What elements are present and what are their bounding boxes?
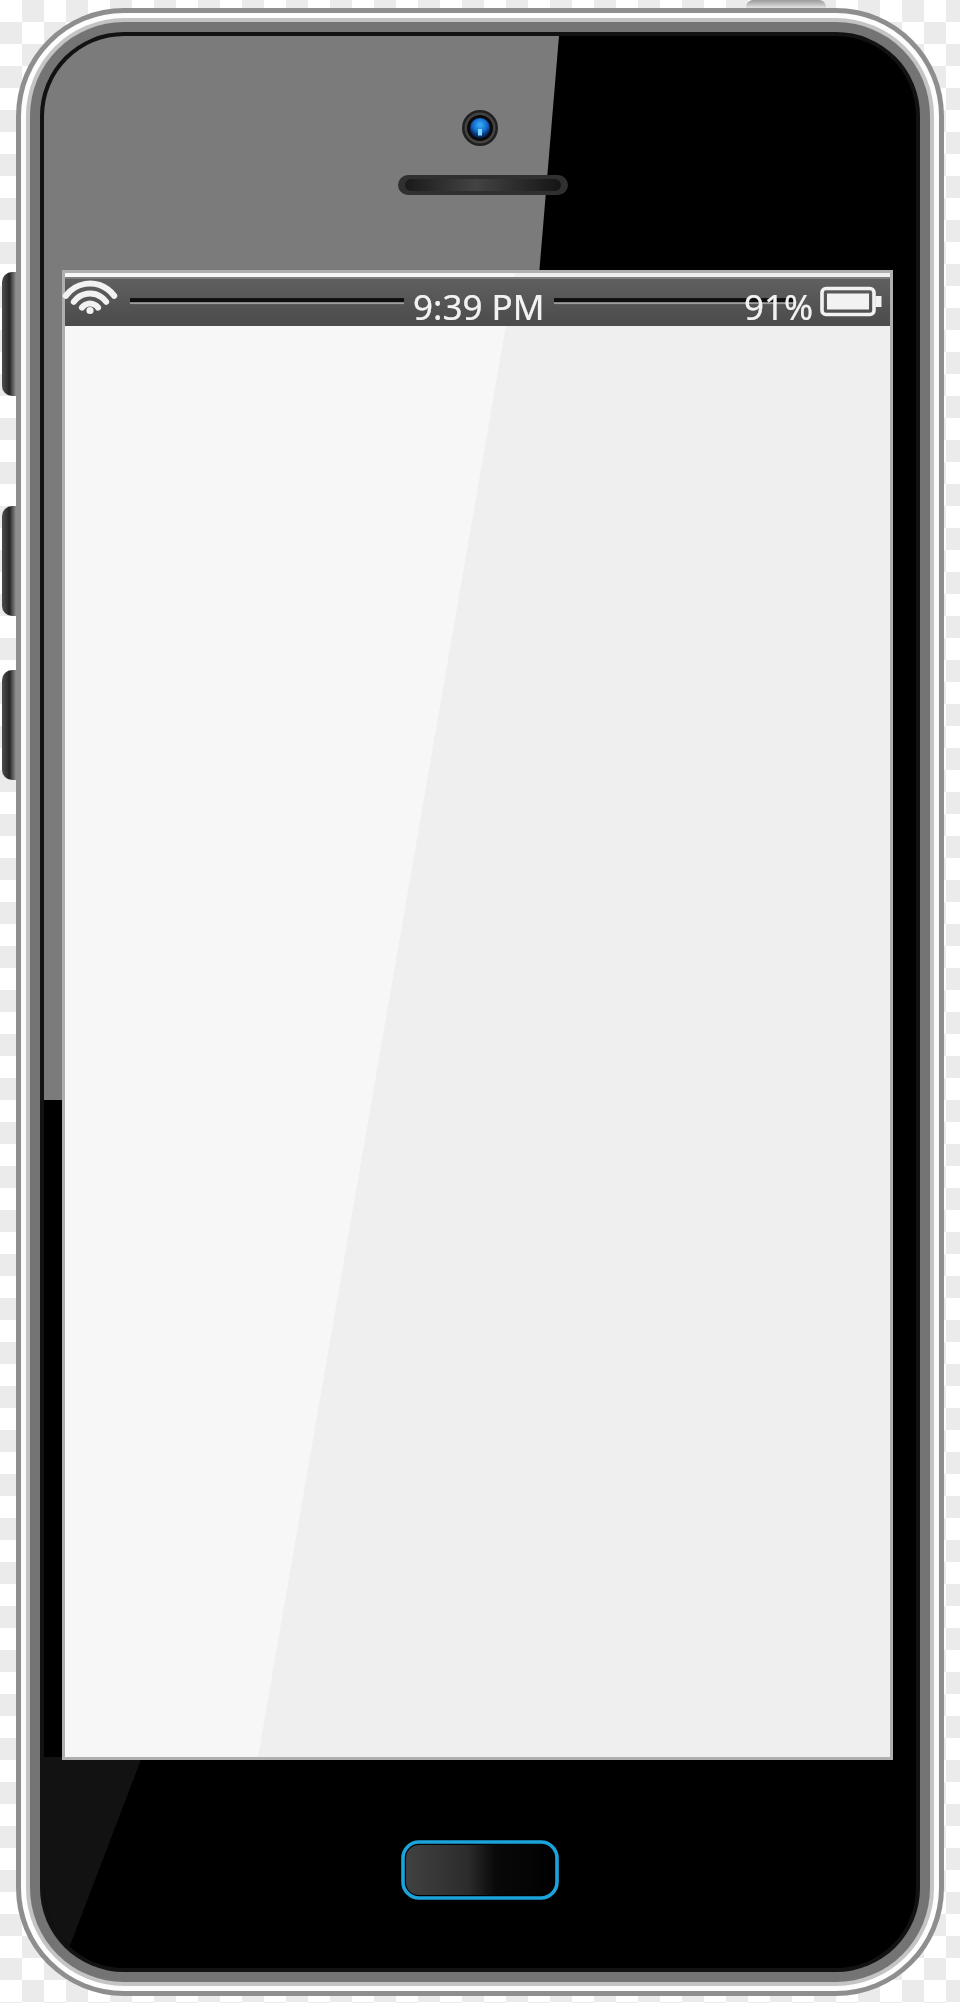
button[interactable]: Screen [65,273,890,1757]
button[interactable]: Ringer switch [2,272,27,396]
staticText: 91% [744,283,814,331]
button[interactable]: Volume down [2,670,27,780]
staticText: 9:39 PM [413,283,545,331]
button[interactable]: Volume up [2,506,27,616]
button[interactable]: Power [746,0,826,24]
button[interactable]: Home [403,1842,557,1898]
